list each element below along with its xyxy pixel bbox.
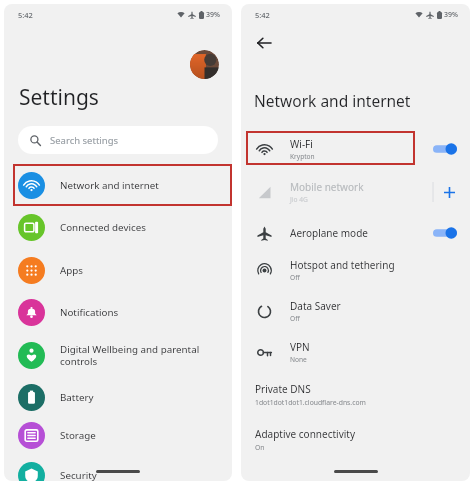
staticText: Notifications	[60, 306, 119, 319]
button[interactable]: Data Saver	[241, 295, 470, 327]
button[interactable]: Adaptive connectivity	[255, 427, 450, 452]
staticText: Private DNS	[255, 382, 311, 396]
button[interactable]: Back	[252, 31, 276, 55]
staticText: Search settings	[50, 134, 119, 147]
button[interactable]: Digital Wellbeing and parental controls	[18, 335, 228, 375]
staticText: 5:42	[18, 10, 33, 20]
staticText: Aeroplane mode	[290, 226, 368, 240]
button[interactable]: Account avatar	[190, 50, 219, 79]
staticText: Storage	[60, 429, 96, 442]
button[interactable]: Network and internet	[18, 168, 228, 202]
staticText: Krypton	[290, 152, 315, 161]
staticText: 1dot1dot1dot1.cloudflare-dns.com	[255, 398, 366, 407]
staticText: Off	[290, 273, 300, 282]
staticText: Hotspot and tethering	[290, 258, 395, 272]
staticText: 39%	[444, 10, 458, 20]
staticText: 39%	[206, 10, 220, 20]
button[interactable]: Wi-Fi	[241, 133, 470, 165]
staticText: 5:42	[255, 10, 270, 20]
staticText: On	[255, 443, 265, 452]
button[interactable]: Security	[18, 458, 228, 481]
staticText: Connected devices	[60, 221, 146, 234]
button[interactable]: Search settings	[18, 126, 218, 154]
staticText: Mobile network	[290, 180, 364, 194]
staticText: Settings	[19, 83, 99, 112]
staticText: None	[290, 355, 307, 364]
button[interactable]: Storage	[18, 418, 228, 452]
button[interactable]: Apps	[18, 253, 228, 287]
button[interactable]: Battery	[18, 380, 228, 414]
staticText: Adaptive connectivity	[255, 427, 356, 441]
button[interactable]: Add network	[441, 184, 457, 200]
button[interactable]: Hotspot and tethering	[241, 254, 470, 286]
staticText: Network and internet	[60, 179, 159, 192]
button[interactable]: Mobile network	[241, 176, 470, 208]
staticText: Data Saver	[290, 299, 341, 313]
button[interactable]: Aeroplane mode	[241, 217, 470, 249]
button[interactable]: Connected devices	[18, 210, 228, 244]
staticText: Network and internet	[254, 90, 411, 111]
staticText: VPN	[290, 340, 310, 354]
staticText: Security	[60, 469, 97, 481]
staticText: Digital Wellbeing and parental controls	[60, 343, 200, 368]
button[interactable]: Aeroplane mode switch	[433, 225, 457, 241]
button[interactable]: VPN	[241, 336, 470, 368]
staticText: Apps	[60, 264, 84, 277]
button[interactable]: Wi-Fi switch	[433, 141, 457, 157]
staticText: Jio 4G	[290, 195, 308, 204]
button[interactable]: Notifications	[18, 295, 228, 329]
staticText: Battery	[60, 391, 94, 404]
staticText: Off	[290, 314, 300, 323]
staticText: Wi-Fi	[290, 137, 313, 151]
button[interactable]: Private DNS	[255, 382, 450, 407]
